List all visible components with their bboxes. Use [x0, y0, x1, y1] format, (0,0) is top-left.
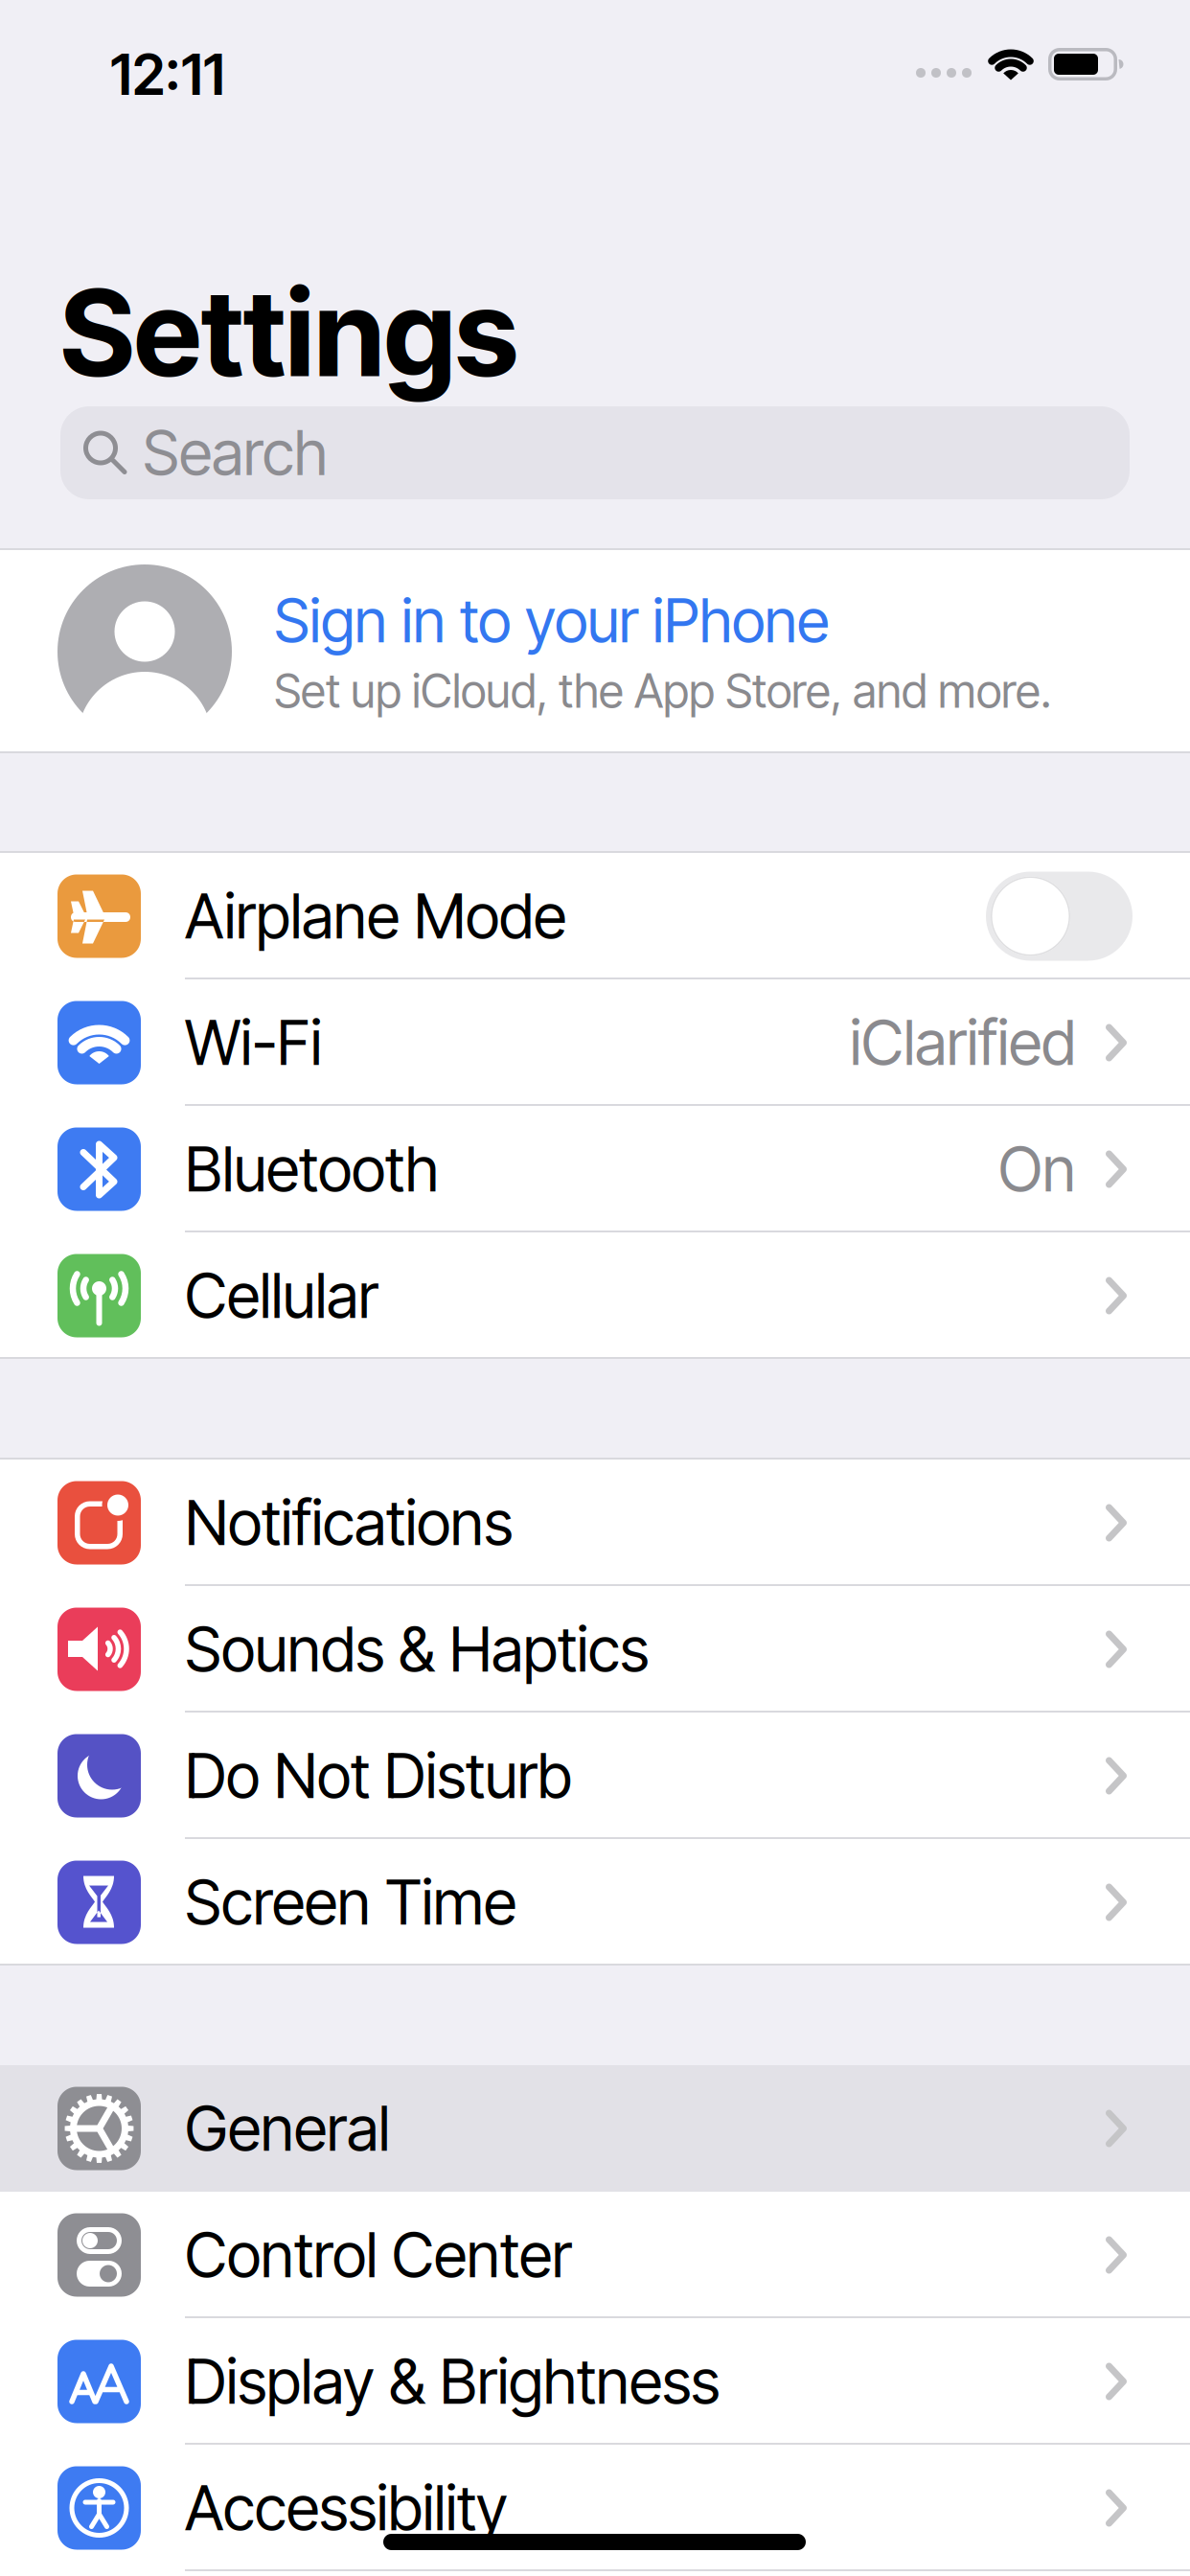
- button[interactable]: Notifications: [0, 1460, 1190, 1586]
- staticText: Control Center: [185, 2220, 572, 2290]
- button[interactable]: Wi-Fi: [0, 979, 1190, 1106]
- staticText: Set up iCloud, the App Store, and more.: [274, 665, 1051, 717]
- staticText: Sounds & Haptics: [185, 1614, 649, 1685]
- staticText: Airplane Mode: [185, 881, 566, 951]
- button[interactable]: Bluetooth: [0, 1106, 1190, 1232]
- staticText: Notifications: [185, 1488, 513, 1558]
- staticText: iClarified: [850, 1007, 1076, 1078]
- staticText: Bluetooth: [185, 1134, 439, 1204]
- button[interactable]: Screen Time: [0, 1839, 1190, 1966]
- button[interactable]: Do Not Disturb: [0, 1713, 1190, 1839]
- staticText: Sign in to your iPhone: [274, 586, 829, 655]
- staticText: On: [998, 1134, 1076, 1204]
- button[interactable]: Display & Brightness: [0, 2318, 1190, 2445]
- staticText: Screen Time: [185, 1867, 516, 1938]
- staticText: Wi-Fi: [185, 1007, 322, 1078]
- button[interactable]: Sign in to your iPhone: [0, 550, 1190, 753]
- staticText: General: [185, 2093, 390, 2164]
- staticText: Display & Brightness: [185, 2346, 720, 2417]
- button[interactable]: General: [0, 2065, 1190, 2192]
- staticText: Accessibility: [185, 2473, 508, 2543]
- staticText: Settings: [60, 264, 518, 401]
- staticText: Do Not Disturb: [185, 1741, 572, 1811]
- button[interactable]: Airplane Mode: [986, 872, 1133, 961]
- button[interactable]: Search: [60, 406, 1130, 499]
- button[interactable]: Accessibility: [0, 2445, 1190, 2571]
- staticText: Search: [143, 418, 328, 488]
- staticText: Cellular: [185, 1260, 378, 1331]
- button[interactable]: Cellular: [0, 1232, 1190, 1359]
- staticText: 12:11: [110, 42, 225, 107]
- button[interactable]: Sounds & Haptics: [0, 1586, 1190, 1713]
- button[interactable]: Control Center: [0, 2192, 1190, 2318]
